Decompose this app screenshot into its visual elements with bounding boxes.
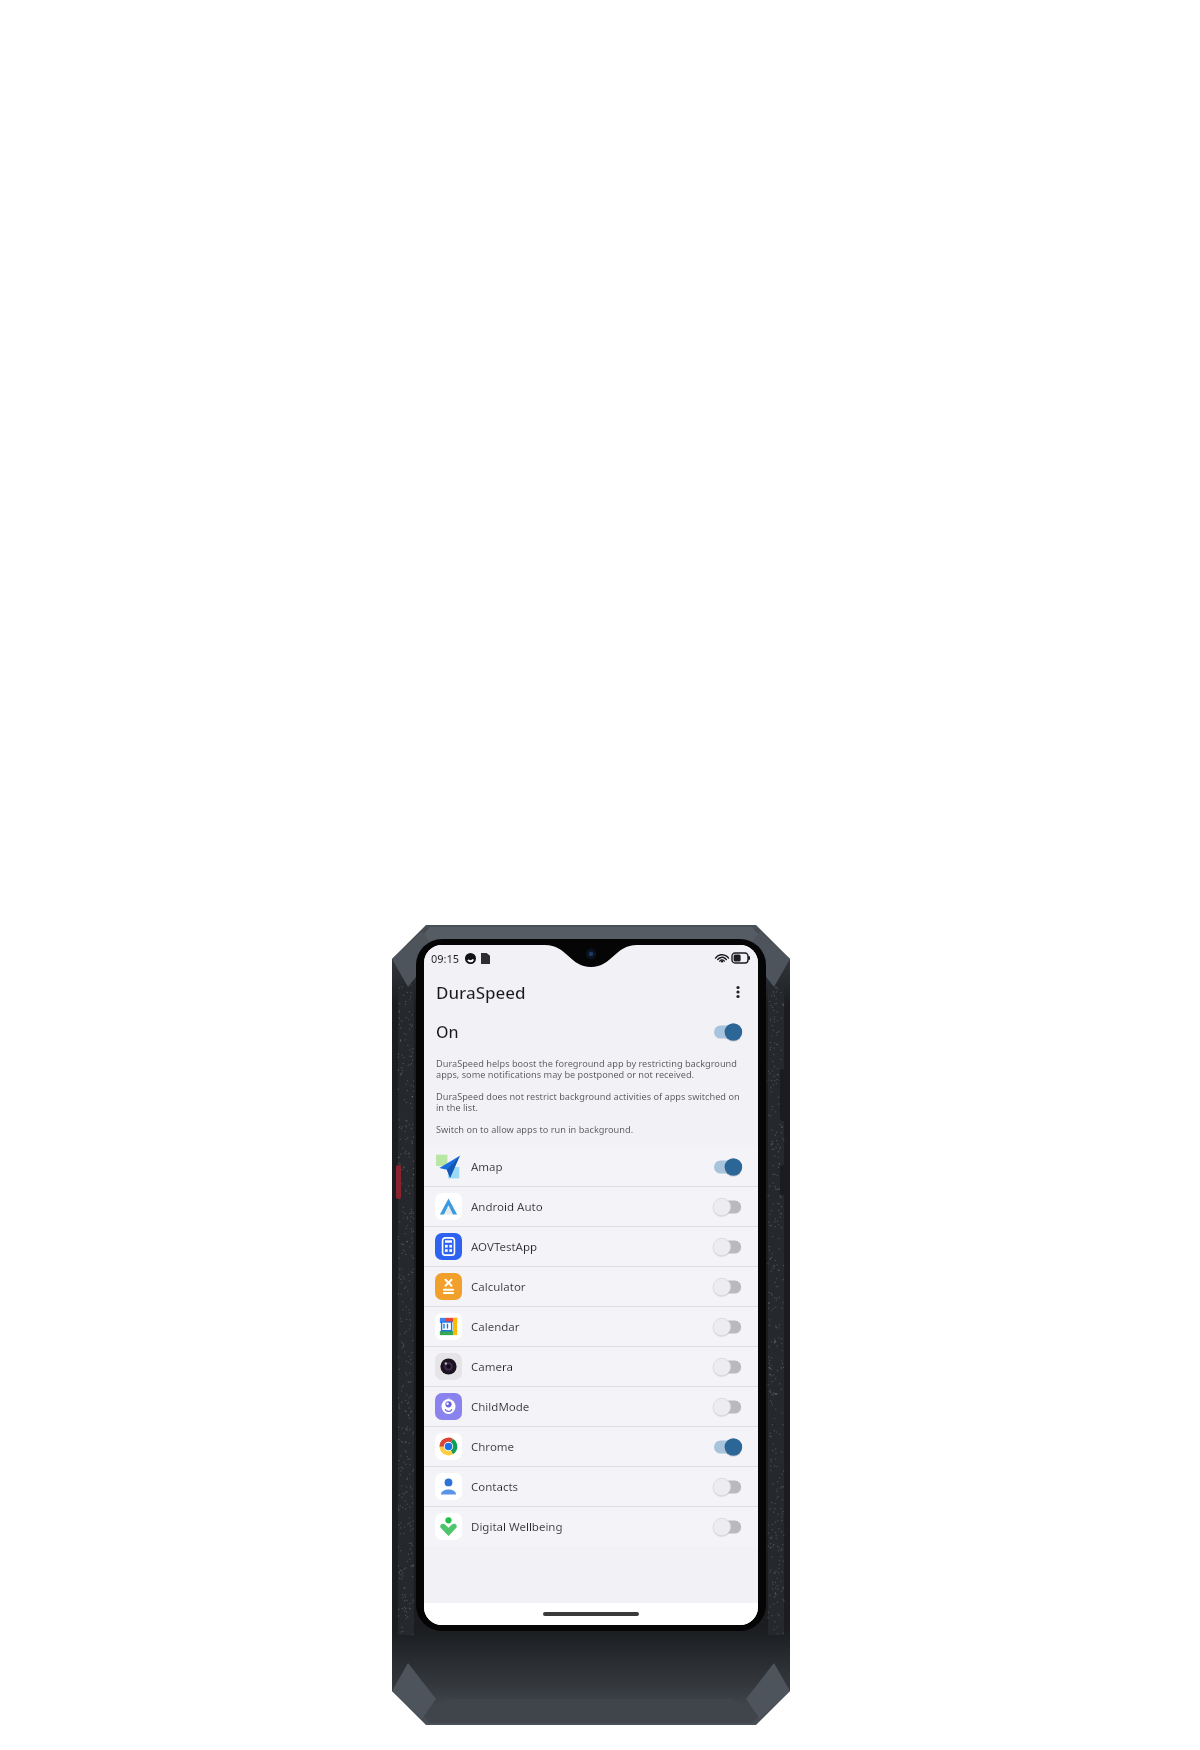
button[interactable]: Switch off: [712, 1197, 746, 1217]
button[interactable]: Calendar: [424, 1307, 758, 1346]
staticText: Calendar: [471, 1319, 520, 1335]
staticText: DuraSpeed: [436, 981, 526, 1004]
staticText: On: [436, 1021, 459, 1043]
staticText: Camera: [471, 1359, 513, 1375]
button[interactable]: Contacts: [424, 1467, 758, 1506]
button[interactable]: Calculator: [424, 1267, 758, 1306]
button[interactable]: ChildMode: [424, 1387, 758, 1426]
staticText: Digital Wellbeing: [471, 1519, 563, 1535]
staticText: Contacts: [471, 1479, 519, 1495]
button[interactable]: Switch off: [712, 1357, 746, 1377]
button[interactable]: Amap: [424, 1147, 758, 1186]
staticText: DuraSpeed helps boost the foreground app…: [436, 1057, 744, 1081]
button[interactable]: Switch off: [712, 1477, 746, 1497]
staticText: Calculator: [471, 1279, 526, 1295]
staticText: AOVTestApp: [471, 1239, 538, 1255]
button[interactable]: Switch off: [712, 1317, 746, 1337]
button[interactable]: Switch on: [712, 1022, 746, 1042]
button[interactable]: On: [424, 1013, 758, 1051]
staticText: 09:15: [431, 951, 460, 966]
staticText: Android Auto: [471, 1199, 543, 1215]
staticText: Chrome: [471, 1439, 515, 1455]
button[interactable]: More options: [722, 976, 754, 1008]
staticText: DuraSpeed does not restrict background a…: [436, 1090, 744, 1114]
staticText: Switch on to allow apps to run in backgr…: [436, 1123, 634, 1136]
button[interactable]: AOVTestApp: [424, 1227, 758, 1266]
button[interactable]: Switch on: [712, 1157, 746, 1177]
button[interactable]: Chrome: [424, 1427, 758, 1466]
button[interactable]: Switch off: [712, 1517, 746, 1537]
staticText: ChildMode: [471, 1399, 530, 1415]
button[interactable]: Switch off: [712, 1237, 746, 1257]
button[interactable]: Switch off: [712, 1277, 746, 1297]
button[interactable]: Camera: [424, 1347, 758, 1386]
staticText: Amap: [471, 1159, 503, 1175]
button[interactable]: Switch on: [712, 1437, 746, 1457]
button[interactable]: Digital Wellbeing: [424, 1507, 758, 1546]
button[interactable]: Android Auto: [424, 1187, 758, 1226]
button[interactable]: Switch off: [712, 1397, 746, 1417]
